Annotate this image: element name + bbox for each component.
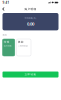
button[interactable]: 收款 — [17, 39, 31, 56]
staticText: 立即转账 — [24, 73, 36, 76]
staticText: 常用 — [2, 34, 6, 36]
staticText: 实时到账 — [4, 45, 12, 47]
button[interactable]: 转账 — [2, 39, 15, 56]
staticText: 可用余额(元) — [24, 17, 36, 19]
button[interactable]: 立即转账 — [2, 71, 58, 77]
staticText: 收款 — [18, 40, 24, 44]
staticText: 二维码收款 — [18, 45, 28, 47]
staticText: 账户明细 — [24, 7, 36, 11]
staticText: 0.00 — [27, 21, 34, 27]
button[interactable]: Back — [0, 5, 7, 13]
staticText: 9:41 — [2, 0, 9, 4]
staticText: 转账 — [4, 40, 10, 44]
